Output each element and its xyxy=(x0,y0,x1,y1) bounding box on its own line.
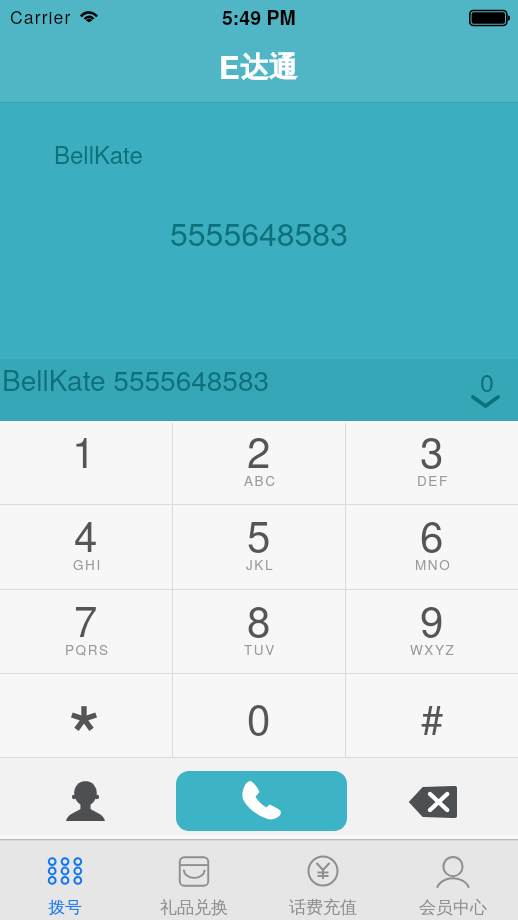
button[interactable]: 2 xyxy=(173,421,345,504)
button[interactable]: Delete xyxy=(392,760,472,843)
staticText: 0 xyxy=(480,363,494,399)
staticText: DEF xyxy=(417,471,449,490)
staticText: ABC xyxy=(244,471,277,490)
staticText: 5:49 PM xyxy=(222,3,296,31)
button[interactable]: Show contact details xyxy=(458,359,518,421)
staticText: GHI xyxy=(73,555,102,574)
button[interactable]: 3 xyxy=(346,421,518,504)
staticText: 1 xyxy=(72,420,96,480)
staticText: Carrier xyxy=(10,4,72,29)
staticText: WXYZ xyxy=(410,640,456,659)
staticText: 6 xyxy=(420,504,444,564)
button[interactable]: 礼品兑换 xyxy=(129,841,258,920)
staticText: TUV xyxy=(244,640,276,659)
button[interactable]: 话费充值 xyxy=(258,841,388,920)
button[interactable]: 会员中心 xyxy=(388,841,518,920)
staticText: BellKate xyxy=(54,136,143,170)
button[interactable]: Star xyxy=(0,674,172,757)
staticText: 5 xyxy=(247,504,271,564)
staticText: 达通 xyxy=(240,50,297,86)
staticText: 0 xyxy=(247,687,271,747)
staticText: JKL xyxy=(246,555,275,574)
staticText: 礼品兑换 xyxy=(160,897,228,918)
button[interactable]: 1 xyxy=(0,421,172,504)
staticText: 9 xyxy=(420,589,444,649)
staticText: 2 xyxy=(247,420,271,480)
staticText: BellKate 5555648583 xyxy=(2,359,270,399)
staticText: 话费充值 xyxy=(289,897,357,918)
staticText: 拨号 xyxy=(48,897,82,918)
button[interactable]: 8 xyxy=(173,590,345,673)
button[interactable]: 拨号 xyxy=(0,841,129,920)
button[interactable]: Call xyxy=(176,771,347,831)
staticText: 5555648583 xyxy=(170,209,348,255)
button[interactable]: 0 xyxy=(173,674,345,757)
button[interactable]: 6 xyxy=(346,505,518,589)
button[interactable]: 4 xyxy=(0,505,172,589)
staticText: # xyxy=(421,688,444,745)
button[interactable]: 5 xyxy=(173,505,345,589)
button[interactable]: # xyxy=(346,674,518,757)
staticText: MNO xyxy=(415,555,452,574)
staticText: 3 xyxy=(420,420,444,480)
staticText: 4 xyxy=(74,504,98,564)
staticText: 7 xyxy=(74,589,98,649)
staticText: 8 xyxy=(247,589,271,649)
button[interactable]: Contacts xyxy=(45,759,125,842)
button[interactable]: 9 xyxy=(346,590,518,673)
staticText: PQRS xyxy=(65,640,110,659)
button[interactable]: 7 xyxy=(0,590,172,673)
staticText: 会员中心 xyxy=(419,897,487,918)
staticText: E xyxy=(219,44,240,88)
